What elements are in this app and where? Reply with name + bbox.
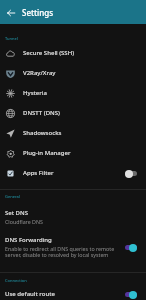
staticText: Cloudflare DNS xyxy=(5,218,43,225)
staticText: Use default route xyxy=(5,290,55,298)
staticText: Connection xyxy=(5,278,27,283)
button[interactable]: Set DNS xyxy=(0,205,146,229)
button[interactable]: Toggle xyxy=(125,290,137,299)
staticText: Apps Filter xyxy=(23,169,125,177)
button[interactable]: Hysteria xyxy=(0,83,146,103)
staticText: Settings xyxy=(22,7,54,18)
button[interactable]: Toggle xyxy=(125,243,137,252)
button[interactable]: DNS Forwarding xyxy=(0,232,146,262)
button[interactable]: Shadowsocks xyxy=(0,123,146,143)
button[interactable]: Use default route xyxy=(0,288,146,300)
button[interactable]: DNSTT (DNS) xyxy=(0,103,146,123)
staticText: Shadowsocks xyxy=(23,129,137,137)
staticText: General xyxy=(5,194,20,199)
staticText: Set DNS xyxy=(5,209,28,217)
button[interactable]: V2Ray/Xray xyxy=(0,63,146,83)
staticText: DNSTT (DNS) xyxy=(23,109,137,117)
staticText: Tunnel xyxy=(5,36,18,41)
button[interactable]: Apps Filter xyxy=(0,163,146,183)
staticText: Plug-in Manager xyxy=(23,149,137,157)
button[interactable]: Back xyxy=(3,5,18,20)
staticText: V2Ray/Xray xyxy=(23,69,137,77)
staticText: DNS Forwarding xyxy=(5,236,52,244)
staticText: Hysteria xyxy=(23,89,137,97)
button[interactable]: Secure Shell (SSH) xyxy=(0,43,146,63)
staticText: Secure Shell (SSH) xyxy=(23,49,137,57)
button[interactable]: Plug-in Manager xyxy=(0,143,146,163)
staticText: Enable to redirect all DNS queries to re… xyxy=(5,245,121,259)
button[interactable]: Toggle xyxy=(125,169,137,178)
